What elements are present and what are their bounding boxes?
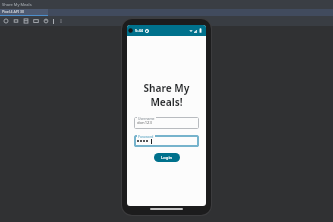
staticText: Pixel 4 API 30 [2, 9, 24, 14]
staticText: Username [138, 116, 155, 121]
button[interactable]: Rotate left [23, 18, 29, 24]
button[interactable]: Login [154, 153, 180, 162]
staticText: Login [161, 155, 173, 161]
button[interactable]: Power [3, 18, 9, 24]
button[interactable]: Pixel 4 API 30 [0, 9, 48, 16]
button[interactable]: Back [43, 18, 49, 24]
button[interactable] [134, 135, 199, 147]
staticText: don123 [137, 120, 152, 126]
staticText: 5:44 [135, 28, 143, 33]
button[interactable]: don123 [134, 117, 199, 129]
button[interactable]: More [58, 18, 64, 24]
staticText: Password [138, 134, 154, 139]
button[interactable]: Volume up [13, 18, 19, 24]
staticText: Share My Meals! [134, 81, 199, 109]
button[interactable]: Camera [33, 18, 39, 24]
staticText: Share My Meals [2, 2, 32, 7]
